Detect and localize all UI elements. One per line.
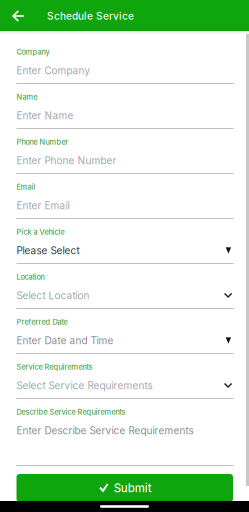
staticText: Enter Phone Number (16, 154, 116, 167)
button[interactable]: Describe Service Requirements (16, 406, 233, 451)
staticText: Enter Email (16, 199, 69, 212)
staticText: Phone Number (16, 138, 68, 146)
staticText: Enter Describe Service Requirements (16, 424, 193, 437)
staticText: Submit (114, 481, 152, 495)
staticText: Company (16, 48, 49, 56)
staticText: Enter Company (16, 64, 90, 77)
staticText: Location (16, 273, 44, 281)
staticText: Service Requirements (16, 363, 92, 371)
button[interactable]: Location (16, 271, 233, 316)
button[interactable]: Name (16, 91, 233, 136)
button[interactable]: Email (16, 181, 233, 226)
button[interactable]: Company (16, 46, 233, 91)
button[interactable]: Phone Number (16, 136, 233, 181)
button[interactable]: Service Requirements (16, 361, 233, 406)
staticText: Enter Name (16, 109, 73, 122)
staticText: Pick a Vehicle (16, 228, 64, 236)
button[interactable]: Back (0, 0, 36, 31)
staticText: Preferred Date (16, 318, 67, 326)
staticText: Please Select (16, 244, 79, 257)
button[interactable]: Pick a Vehicle (16, 226, 233, 271)
button[interactable]: Submit (16, 474, 233, 502)
staticText: Email (16, 183, 35, 191)
staticText: Enter Date and Time (16, 334, 113, 347)
button[interactable]: Preferred Date (16, 316, 233, 361)
staticText: Select Service Requirements (16, 379, 152, 392)
staticText: Describe Service Requirements (16, 408, 125, 416)
staticText: Schedule Service (47, 10, 134, 22)
staticText: Select Location (16, 289, 89, 302)
staticText: Name (16, 93, 37, 101)
